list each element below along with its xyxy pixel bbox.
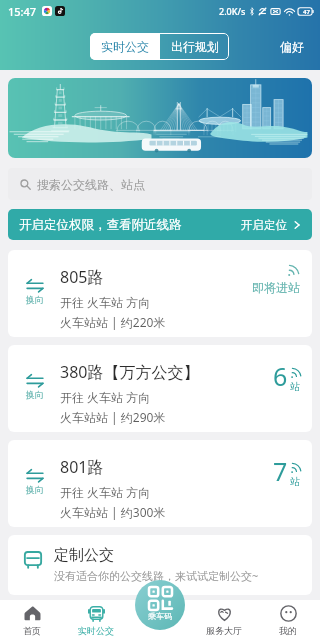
staticText: 805路 — [60, 266, 104, 288]
button[interactable] — [8, 78, 312, 158]
button[interactable]: 乘车码 — [135, 580, 185, 630]
staticText: 偏好 — [280, 39, 304, 54]
button[interactable]: 搜索公交线路、站点 — [8, 168, 312, 200]
button[interactable]: 换向 — [8, 250, 312, 337]
staticText: 没有适合你的公交线路，来试试定制公交~ — [54, 568, 259, 583]
staticText: 380路【万方公交】 — [60, 361, 200, 383]
staticText: 实时公交 — [78, 625, 114, 636]
staticText: 出行规划 — [171, 39, 219, 54]
staticText: 7 — [273, 454, 288, 488]
button[interactable]: 偏好 — [274, 33, 310, 60]
staticText: 站 — [290, 475, 300, 488]
staticText: 定制公交 — [54, 546, 114, 565]
button[interactable]: 服务大厅 — [192, 600, 256, 640]
staticText: 我的 — [279, 625, 297, 636]
button[interactable]: 开启定位权限，查看附近线路 — [8, 209, 312, 240]
button[interactable]: 出行规划 — [160, 33, 229, 60]
staticText: 开往 火车站 方向 — [60, 484, 151, 500]
staticText: 6 — [273, 359, 288, 393]
staticText: 换向 — [26, 294, 44, 305]
staticText: 乘车码 — [148, 611, 172, 621]
staticText: 开往 火车站 方向 — [60, 294, 151, 310]
staticText: 47 — [303, 8, 310, 16]
staticText: 搜索公交线路、站点 — [37, 177, 145, 192]
button[interactable]: 换向 — [8, 440, 312, 527]
button[interactable]: 首页 — [0, 600, 64, 640]
staticText: 开往 火车站 方向 — [60, 389, 151, 405]
staticText: 开启定位权限，查看附近线路 — [19, 217, 182, 233]
staticText: 801路 — [60, 456, 104, 478]
button[interactable]: 实时公交 — [90, 33, 160, 60]
staticText: 即将进站 — [252, 280, 300, 295]
staticText: 15:47 — [8, 4, 37, 19]
button[interactable]: 定制公交 — [8, 535, 312, 595]
staticText: 火车站站 | 约220米 — [60, 314, 166, 330]
button[interactable]: 换向 — [8, 345, 312, 432]
staticText: 开启定位 — [241, 218, 287, 232]
staticText: 火车站站 | 约300米 — [60, 504, 166, 520]
staticText: 换向 — [26, 484, 44, 495]
staticText: 火车站站 | 约290米 — [60, 409, 166, 425]
staticText: 2.0K/s — [219, 5, 246, 17]
button[interactable]: 实时公交 — [64, 600, 128, 640]
button[interactable]: 我的 — [256, 600, 320, 640]
staticText: 换向 — [26, 389, 44, 400]
staticText: 首页 — [23, 625, 41, 636]
staticText: 服务大厅 — [206, 625, 242, 636]
staticText: 实时公交 — [101, 39, 149, 54]
staticText: 站 — [290, 380, 300, 393]
